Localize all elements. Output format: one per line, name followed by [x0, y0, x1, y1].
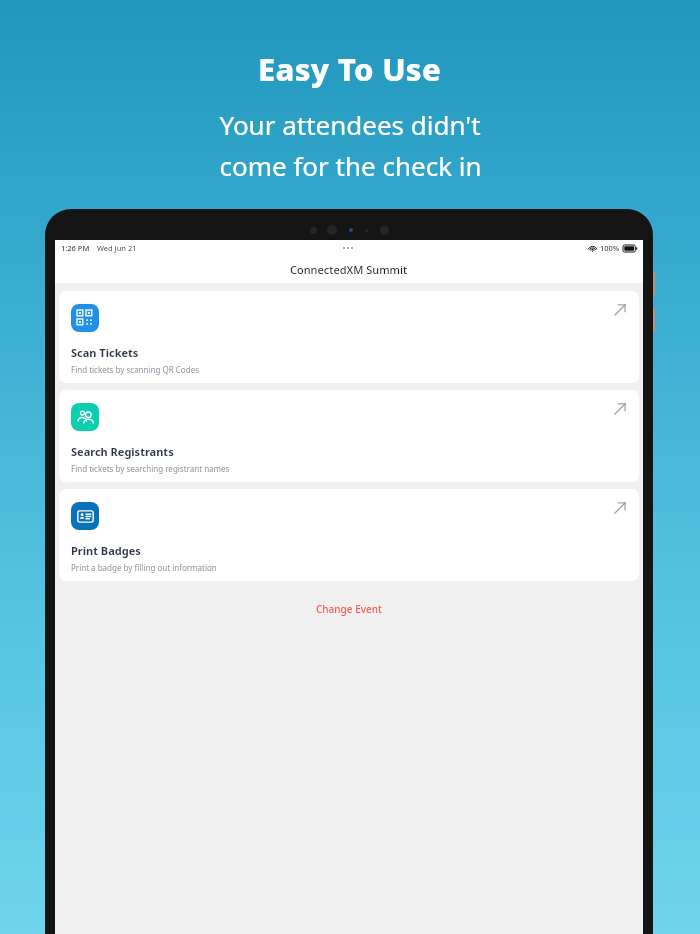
staticText: Change Event [316, 602, 382, 616]
staticText: ConnectedXM Summit [290, 262, 408, 277]
staticText: Print a badge by filling out information [71, 562, 217, 573]
staticText: Your attendees didn't [219, 107, 481, 142]
staticText: Find tickets by scanning QR Codes [71, 364, 199, 375]
button[interactable]: Scan Tickets [59, 291, 639, 383]
staticText: 100% [600, 243, 620, 253]
staticText: Print Badges [71, 543, 141, 558]
staticText: Wed Jun 21 [97, 243, 137, 253]
staticText: come for the check in [219, 148, 482, 183]
button[interactable]: Open Print Badges [609, 497, 631, 519]
button[interactable]: Open Scan Tickets [609, 299, 631, 321]
staticText: Scan Tickets [71, 345, 139, 360]
button[interactable]: Print Badges [59, 489, 639, 581]
staticText: 1:26 PM [61, 243, 90, 253]
staticText: Find tickets by searching registrant nam… [71, 463, 230, 474]
button[interactable]: Open Search Registrants [609, 398, 631, 420]
button[interactable]: Change Event [306, 598, 392, 620]
button[interactable]: Search Registrants [59, 390, 639, 482]
staticText: Easy To Use [258, 48, 442, 90]
staticText: Search Registrants [71, 444, 174, 459]
